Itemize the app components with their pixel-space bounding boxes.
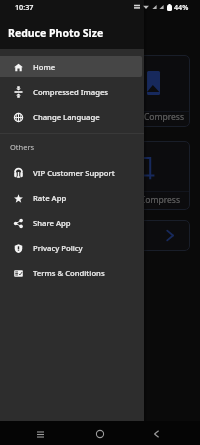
button[interactable]: Recent apps <box>26 421 55 445</box>
button[interactable]: Home <box>85 421 115 445</box>
button[interactable]: Compress <box>10 55 190 127</box>
button[interactable]: Terms & Conditions <box>0 260 144 285</box>
staticText: 44% <box>174 2 189 12</box>
button[interactable]: Next <box>10 220 190 251</box>
staticText: VIP Customer Support <box>33 168 115 178</box>
staticText: Home <box>33 62 56 72</box>
staticText: Reduce Photo Size <box>8 26 104 40</box>
button[interactable]: Home <box>0 54 144 79</box>
staticText: Share App <box>33 218 71 228</box>
button[interactable]: Rate App <box>0 185 144 210</box>
staticText: Change Language <box>33 112 100 122</box>
staticText: Terms & Conditions <box>33 268 105 278</box>
button[interactable]: Share App <box>0 210 144 235</box>
button[interactable]: Change Language <box>0 104 144 129</box>
staticText: Others <box>10 142 35 152</box>
staticText: Compress <box>144 111 184 123</box>
button[interactable]: Privacy Policy <box>0 235 144 260</box>
staticText: 10:37 <box>15 2 34 12</box>
staticText: Rate App <box>33 193 67 203</box>
staticText: Compressed Images <box>33 87 109 97</box>
button[interactable]: Compress <box>10 141 190 210</box>
button[interactable]: Compressed Images <box>0 79 144 104</box>
staticText: Compress <box>140 194 180 206</box>
button[interactable]: VIP Customer Support <box>0 160 144 185</box>
staticText: Privacy Policy <box>33 243 83 253</box>
button[interactable]: Back <box>141 421 171 445</box>
